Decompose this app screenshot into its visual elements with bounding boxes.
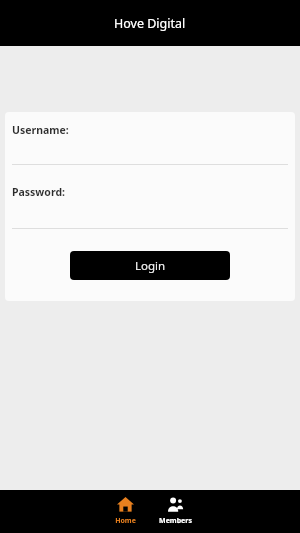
staticText: Members [159,516,192,526]
button[interactable]: Password: [5,165,295,228]
staticText: Username: [12,123,69,137]
staticText: Login [135,258,166,274]
staticText: Password: [12,185,65,199]
button[interactable]: Home [102,490,148,526]
staticText: Hove Digital [114,15,186,32]
button[interactable]: Username: [5,112,295,164]
button[interactable]: Members [152,490,198,526]
staticText: Home [115,516,136,526]
button[interactable]: Login [70,251,230,280]
